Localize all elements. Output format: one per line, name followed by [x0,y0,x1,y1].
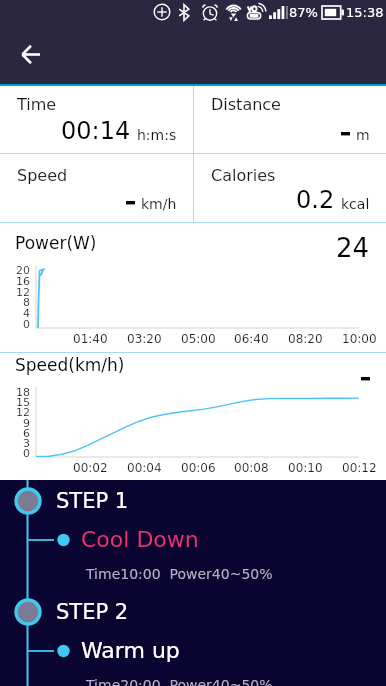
button[interactable]: STEP 2 [0,594,386,630]
staticText: 06:40 [234,332,269,346]
staticText: 0 [23,318,30,331]
button[interactable]: Calories [194,154,386,222]
staticText: kcal [341,196,370,212]
staticText: 8 [23,296,30,309]
staticText: 00:04 [127,461,162,475]
staticText: 9 [23,417,30,430]
staticText: Warm up [81,638,180,664]
staticText: 12 [16,286,30,299]
staticText: 0 [23,447,30,460]
staticText: 24 [336,233,370,263]
staticText: Time [17,95,57,114]
staticText: 15 [16,396,30,409]
button[interactable]: Distance [194,86,386,153]
staticText: 16 [16,275,30,288]
staticText: 4 [23,307,30,320]
staticText: 00:02 [73,461,108,475]
staticText: 08:20 [288,332,323,346]
staticText: 00:12 [342,461,377,475]
staticText: 3 [23,437,30,450]
staticText: Speed(km/h) [15,355,125,375]
staticText: Speed [17,166,68,185]
staticText: 6 [23,427,30,440]
staticText: Calories [211,166,276,185]
staticText: STEP 2 [56,600,129,624]
button[interactable]: Time [0,86,193,153]
staticText: h:m:s [137,127,177,143]
staticText: 05:00 [181,332,216,346]
staticText: Cool Down [81,527,199,553]
staticText: 10:00 [342,332,377,346]
button[interactable]: Speed [0,154,193,222]
button[interactable]: Cool Down [0,523,386,557]
staticText: STEP 1 [56,489,129,513]
staticText: Power(W) [15,233,97,253]
staticText: 12 [16,406,30,419]
button[interactable]: STEP 1 [0,483,386,519]
staticText: Distance [211,95,281,114]
button[interactable]: Back [8,31,54,77]
staticText: 00:08 [234,461,269,475]
staticText: 00:14 [61,117,131,145]
staticText: 00:06 [181,461,216,475]
staticText: 20 [16,264,30,277]
staticText: 03:20 [127,332,162,346]
staticText: 00:10 [288,461,323,475]
staticText: Time20:00 Power40~50% [86,677,273,686]
staticText: 0.2 [296,186,335,214]
staticText: 01:40 [73,332,108,346]
staticText: 87% [289,5,318,20]
staticText: km/h [141,196,177,212]
staticText: m [356,127,370,143]
button[interactable]: Warm up [0,634,386,668]
staticText: 18 [16,386,30,399]
staticText: Time10:00 Power40~50% [86,566,273,582]
staticText: 15:38 [346,5,384,20]
